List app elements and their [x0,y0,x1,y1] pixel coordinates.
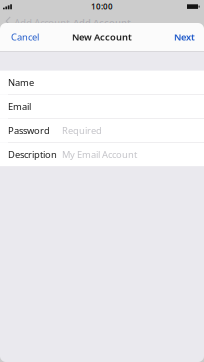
staticText: Cancel [11,31,39,43]
staticText: Add Account [14,16,69,28]
staticText: Password [8,124,50,137]
staticText: Description [8,148,57,161]
staticText: Name [8,76,34,89]
staticText: Add Account [73,16,131,28]
staticText: 10:00 [91,1,113,12]
button[interactable]: Next [171,25,196,49]
button[interactable]: Name [0,71,204,95]
button[interactable]: Password [0,119,204,143]
staticText: Next [174,31,195,43]
staticText: Email [8,100,31,113]
staticText: New Account [72,31,132,43]
staticText: Required [62,124,102,137]
staticText: My Email Account [62,148,137,161]
button[interactable]: Description [0,143,204,166]
button[interactable]: Email [0,95,204,119]
button[interactable]: Cancel [8,25,42,49]
